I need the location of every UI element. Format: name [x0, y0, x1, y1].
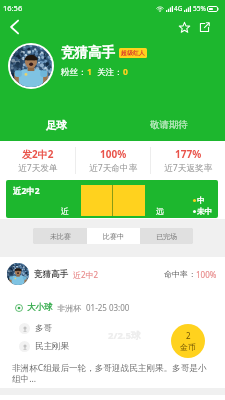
staticText: 竞猜高手: [34, 269, 68, 280]
button[interactable]: 已完场: [140, 228, 193, 244]
staticText: 非洲杯: [57, 303, 81, 313]
staticText: 超级红人: [121, 49, 145, 57]
staticText: 大小球: [27, 302, 53, 313]
staticText: 2/2.5球: [108, 329, 141, 342]
staticText: 竞猜高手: [61, 44, 115, 61]
staticText: 177%: [175, 147, 202, 161]
staticText: 1: [87, 66, 92, 78]
staticText: 未比赛: [50, 232, 71, 241]
button[interactable]: 177%: [151, 141, 225, 180]
staticText: 16:56: [3, 3, 23, 13]
staticText: 多哥: [35, 323, 52, 334]
staticText: 中: [197, 196, 205, 205]
staticText: 近: [61, 206, 69, 216]
staticText: 粉丝：: [61, 67, 87, 78]
staticText: 未中: [197, 207, 212, 216]
staticText: 敬请期待: [150, 119, 188, 131]
staticText: 关注：: [97, 67, 123, 78]
button[interactable]: Back: [4, 17, 24, 37]
button[interactable]: 100%: [76, 141, 150, 180]
staticText: 近2中2: [73, 269, 99, 280]
staticText: 民主刚果: [35, 341, 69, 352]
button[interactable]: 比赛中: [87, 228, 140, 244]
button[interactable]: 近2中2: [6, 180, 218, 218]
button[interactable]: Favorite: [177, 20, 191, 34]
staticText: 非洲杯C组最后一轮，多哥迎战民主刚果。多哥是小组中...: [12, 362, 212, 385]
staticText: 近7天命中率: [89, 162, 138, 174]
staticText: 近7天发单: [18, 162, 58, 174]
staticText: 01-25 03:00: [86, 302, 130, 313]
button[interactable]: 发2中2: [0, 141, 75, 180]
staticText: 100%: [100, 147, 127, 161]
button[interactable]: 足球: [0, 113, 112, 137]
staticText: 命中率：: [164, 269, 196, 279]
staticText: 55%: [193, 4, 206, 13]
staticText: 发2中2: [22, 147, 54, 161]
staticText: 比赛中: [103, 232, 124, 241]
staticText: 远: [156, 206, 164, 216]
staticText: 100%: [196, 269, 217, 280]
button[interactable]: Share: [197, 20, 211, 34]
button[interactable]: 2: [171, 324, 205, 358]
staticText: 已完场: [156, 232, 177, 241]
button[interactable]: 竞猜高手: [0, 257, 225, 388]
staticText: 0: [123, 66, 128, 78]
staticText: 近2中2: [13, 185, 40, 197]
staticText: 近7天返奖率: [164, 162, 213, 174]
staticText: 足球: [46, 119, 67, 132]
staticText: 4G: [174, 4, 183, 13]
button[interactable]: 未比赛: [33, 228, 87, 244]
staticText: 2: [186, 330, 191, 341]
staticText: 金币: [180, 342, 196, 352]
button[interactable]: 敬请期待: [112, 113, 225, 137]
